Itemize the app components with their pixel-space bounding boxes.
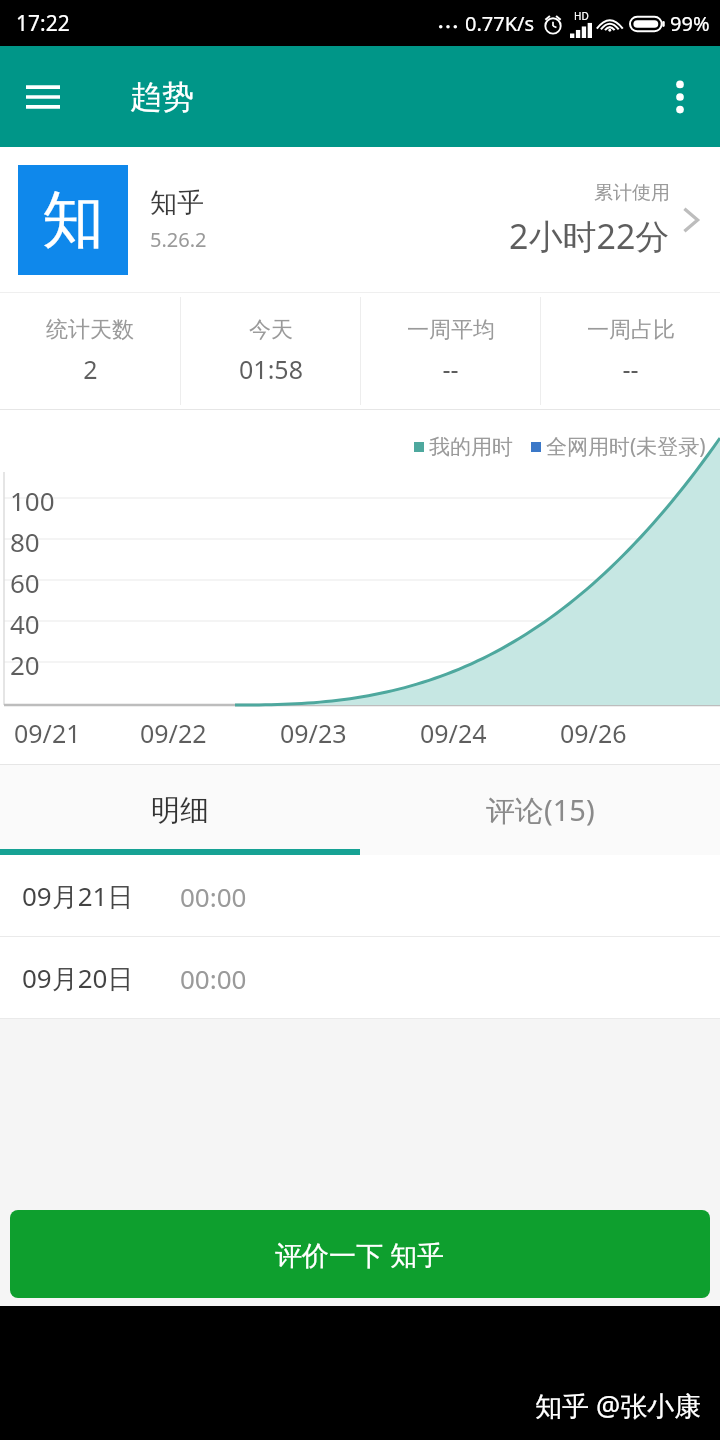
- staticText: 今天: [249, 316, 293, 344]
- staticText: 知乎: [150, 186, 204, 220]
- staticText: 60: [10, 565, 40, 600]
- staticText: 统计天数: [46, 316, 134, 344]
- button[interactable]: 评价一下 知乎: [10, 1210, 710, 1298]
- staticText: 00:00: [180, 879, 247, 914]
- staticText: 2小时22分: [509, 213, 670, 259]
- button[interactable]: 评论(15): [360, 765, 720, 855]
- staticText: 17:22: [16, 9, 70, 38]
- staticText: 明细: [151, 792, 209, 829]
- staticText: 20: [10, 647, 40, 682]
- button[interactable]: Menu: [14, 68, 72, 126]
- button[interactable]: 一周平均: [361, 292, 540, 410]
- staticText: 评论(15): [486, 790, 595, 830]
- staticText: 我的用时: [429, 434, 513, 460]
- staticText: 09/22: [140, 716, 207, 750]
- staticText: 一周平均: [407, 316, 495, 344]
- staticText: 09月21日: [22, 878, 134, 914]
- staticText: HD: [574, 9, 589, 23]
- staticText: 100: [10, 483, 55, 518]
- staticText: 0.77K/s: [465, 10, 535, 37]
- button[interactable]: 知: [0, 147, 720, 292]
- staticText: 09月20日: [22, 960, 134, 996]
- staticText: 09/21: [14, 716, 81, 750]
- staticText: 09/26: [560, 716, 627, 750]
- staticText: 40: [10, 606, 40, 641]
- button[interactable]: 明细: [0, 765, 360, 855]
- staticText: 80: [10, 524, 40, 559]
- staticText: 5.26.2: [150, 226, 207, 253]
- button[interactable]: 统计天数: [0, 292, 180, 410]
- staticText: 99%: [670, 10, 710, 37]
- button[interactable]: 09月21日: [0, 855, 720, 937]
- staticText: 一周占比: [587, 316, 675, 344]
- staticText: 趋势: [130, 77, 194, 117]
- staticText: 全网用时(未登录): [546, 432, 706, 461]
- staticText: 知乎 @张小康: [535, 1387, 702, 1424]
- button[interactable]: 09月20日: [0, 937, 720, 1019]
- staticText: 累计使用: [594, 181, 670, 205]
- staticText: 09/24: [420, 716, 487, 750]
- button[interactable]: 一周占比: [541, 292, 720, 410]
- button[interactable]: More options: [652, 69, 708, 125]
- staticText: --: [622, 352, 639, 386]
- staticText: 01:58: [239, 352, 303, 386]
- staticText: 知: [42, 181, 104, 259]
- staticText: 评价一下 知乎: [275, 1236, 445, 1273]
- staticText: 09/23: [280, 716, 347, 750]
- staticText: 2: [83, 352, 98, 386]
- staticText: --: [442, 352, 459, 386]
- button[interactable]: 今天: [181, 292, 360, 410]
- staticText: 00:00: [180, 961, 247, 996]
